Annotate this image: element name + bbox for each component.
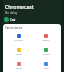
staticText: Photos xyxy=(15,67,23,70)
staticText: Chromecast xyxy=(5,4,34,11)
staticText: Drive xyxy=(43,67,49,70)
staticText: Netflix xyxy=(42,39,49,42)
staticText: No delay xyxy=(5,11,18,15)
button[interactable]: Spotify xyxy=(32,48,59,56)
button[interactable]: Netflix xyxy=(32,34,59,42)
button[interactable]: Cast xyxy=(4,17,16,22)
staticText: Cast to device xyxy=(5,26,23,30)
button[interactable]: Drive xyxy=(32,62,59,70)
button[interactable]: Music xyxy=(5,48,32,56)
button[interactable]: YouTube xyxy=(5,34,32,42)
staticText: YouTube xyxy=(14,39,23,42)
button[interactable]: Photos xyxy=(5,62,32,70)
staticText: Spotify xyxy=(42,53,50,56)
staticText: Cast xyxy=(10,18,16,22)
staticText: Music xyxy=(16,53,22,56)
